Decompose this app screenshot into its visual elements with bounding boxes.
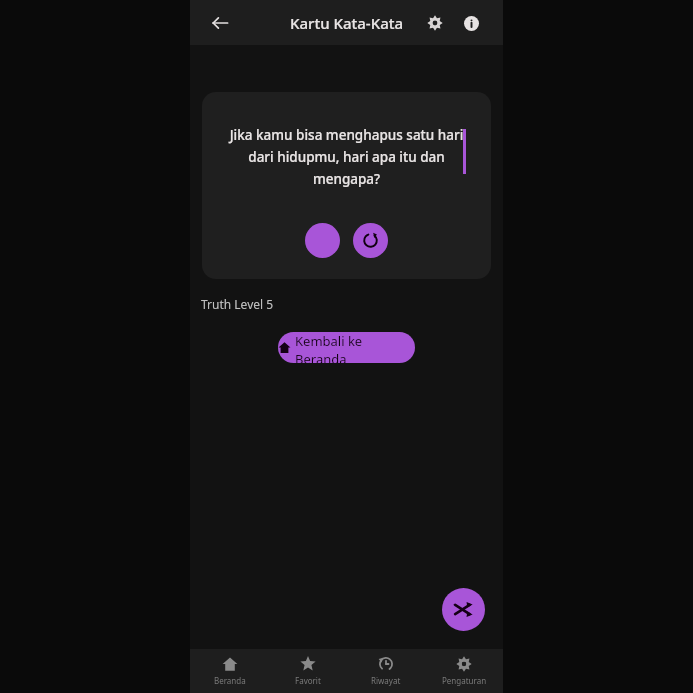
- button[interactable]: Favorite: [305, 223, 340, 258]
- staticText: Pengaturan: [442, 675, 487, 686]
- staticText: Riwayat: [371, 675, 401, 686]
- button[interactable]: Riwayat: [347, 649, 425, 693]
- button[interactable]: Info: [457, 9, 485, 37]
- button[interactable]: Settings: [421, 9, 449, 37]
- staticText: Kartu Kata-Kata: [290, 13, 404, 33]
- staticText: Favorit: [295, 675, 321, 686]
- button[interactable]: Refresh: [353, 223, 388, 258]
- button[interactable]: Favorit: [269, 649, 347, 693]
- button[interactable]: Shuffle: [442, 588, 485, 631]
- staticText: Jika kamu bisa menghapus satu hari dari …: [228, 126, 465, 188]
- button[interactable]: Beranda: [190, 649, 269, 693]
- staticText: Beranda: [214, 675, 246, 686]
- staticText: Kembali ke Beranda: [295, 332, 415, 363]
- button[interactable]: Pengaturan: [425, 649, 503, 693]
- button[interactable]: Jika kamu bisa menghapus satu hari dari …: [202, 92, 491, 279]
- button[interactable]: Back: [204, 7, 236, 39]
- staticText: Truth Level 5: [201, 296, 274, 312]
- button[interactable]: Kembali ke Beranda: [278, 332, 415, 363]
